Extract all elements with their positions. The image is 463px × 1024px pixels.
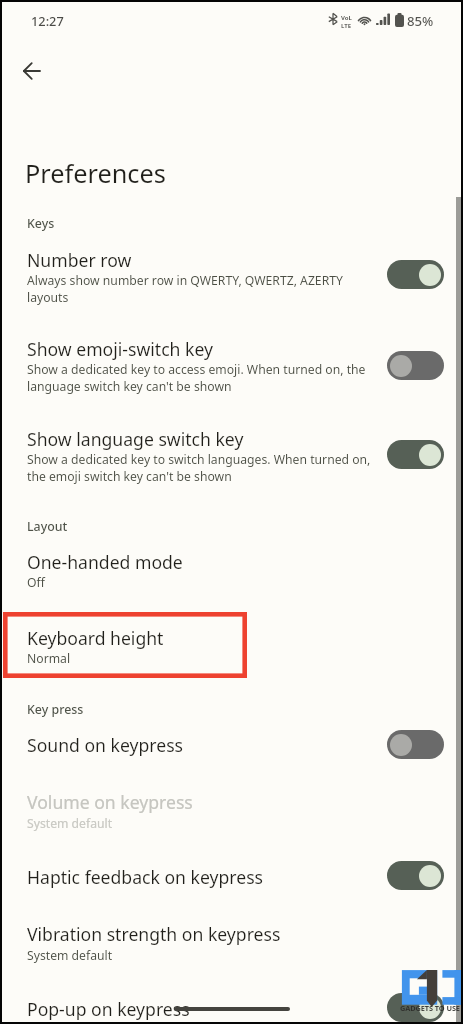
staticText: Layout xyxy=(27,518,68,535)
button[interactable] xyxy=(0,910,463,965)
button[interactable]: Toggle off xyxy=(387,730,444,759)
button[interactable] xyxy=(0,980,463,1024)
staticText: Off xyxy=(27,574,45,591)
button[interactable] xyxy=(0,320,463,400)
staticText: Sound on keypress xyxy=(27,733,183,757)
button[interactable]: Toggle on xyxy=(387,993,444,1022)
staticText: Key press xyxy=(27,701,84,718)
button[interactable] xyxy=(0,725,463,773)
button[interactable]: Toggle off xyxy=(387,351,444,380)
staticText: Show a dedicated key to switch languages… xyxy=(27,451,372,484)
button[interactable] xyxy=(0,235,463,305)
staticText: Always show number row in QWERTY, QWERTZ… xyxy=(27,272,372,305)
staticText: Keyboard height xyxy=(27,626,164,650)
staticText: System default xyxy=(27,815,113,832)
staticText: Normal xyxy=(27,650,71,667)
staticText: Number row xyxy=(27,248,132,272)
button[interactable]: Toggle on xyxy=(387,260,444,289)
button[interactable] xyxy=(0,410,463,490)
staticText: One-handed mode xyxy=(27,550,183,574)
staticText: Show emoji-switch key xyxy=(27,337,213,361)
staticText: Show language switch key xyxy=(27,427,244,451)
staticText: 12:27 xyxy=(31,12,64,29)
staticText: Preferences xyxy=(25,156,166,190)
button[interactable]: Toggle on xyxy=(387,861,444,890)
button[interactable]: Back xyxy=(9,48,54,93)
button[interactable] xyxy=(0,785,463,840)
staticText: System default xyxy=(27,947,113,964)
staticText: LTE xyxy=(341,22,352,30)
staticText: Show a dedicated key to access emoji. Wh… xyxy=(27,361,372,394)
staticText: Haptic feedback on keypress xyxy=(27,865,264,889)
staticText: Pop-up on keypress xyxy=(27,997,190,1021)
staticText: Volume on keypress xyxy=(27,790,193,814)
button[interactable] xyxy=(0,540,463,600)
staticText: 85% xyxy=(407,12,434,30)
staticText: GADGETS TO USE xyxy=(400,1003,460,1013)
button[interactable]: Toggle on xyxy=(387,440,444,469)
staticText: Keys xyxy=(27,215,55,232)
staticText: VoL xyxy=(341,14,352,22)
button[interactable] xyxy=(0,615,463,675)
button[interactable] xyxy=(0,855,463,903)
staticText: Vibration strength on keypress xyxy=(27,922,281,946)
